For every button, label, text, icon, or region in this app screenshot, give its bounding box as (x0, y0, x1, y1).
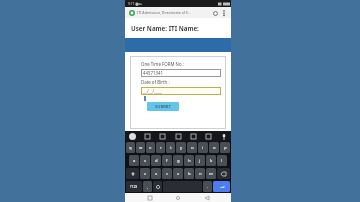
staticText: . (207, 184, 209, 190)
button[interactable]: v (173, 168, 183, 179)
button[interactable]: a (129, 155, 139, 166)
staticText: x (155, 171, 158, 177)
button[interactable]: d (151, 155, 161, 166)
button[interactable]: i (198, 142, 208, 153)
button[interactable]: o (209, 142, 219, 153)
staticText: s (144, 158, 147, 164)
staticText: y (180, 145, 183, 151)
button[interactable]: s (140, 155, 150, 166)
button[interactable]: Refresh (212, 10, 218, 16)
button[interactable]: Voice input (220, 133, 227, 140)
staticText: i (202, 145, 204, 151)
button[interactable]: g (173, 155, 183, 166)
button[interactable]: Emoji (153, 181, 162, 192)
button[interactable]: ?123 (126, 181, 142, 192)
button[interactable]: Shift (126, 168, 139, 179)
staticText: SUBMIT (155, 104, 171, 110)
button[interactable]: GIF (144, 133, 151, 140)
button[interactable]: b (184, 168, 194, 179)
button[interactable]: Clipboard (190, 133, 197, 140)
staticText: User Name: ITI Name: (131, 24, 199, 32)
staticText: 9:17 ⬤▾▴ (128, 2, 142, 6)
button[interactable]: l (217, 155, 227, 166)
button[interactable]: . (203, 181, 212, 192)
staticText: u (191, 145, 194, 151)
staticText: v (177, 171, 180, 177)
staticText: a (133, 158, 136, 164)
staticText: ?123 (130, 184, 138, 189)
button[interactable]: n (195, 168, 205, 179)
button[interactable]: SUBMIT (147, 102, 179, 111)
button[interactable]: z (140, 168, 150, 179)
staticText: t (170, 145, 172, 151)
button[interactable]: More (205, 133, 212, 140)
staticText: 44571341 (143, 70, 164, 76)
button[interactable]: w (136, 142, 145, 153)
button[interactable]: Recents (146, 194, 154, 202)
staticText: Date of Birth : (141, 79, 170, 85)
staticText: d (155, 158, 158, 164)
staticText: , (147, 184, 149, 190)
button[interactable]: x (151, 168, 161, 179)
button[interactable]: Keyboard settings (129, 133, 136, 140)
staticText: One Time FORM No : (141, 61, 184, 67)
button[interactable]: h (184, 155, 194, 166)
button[interactable]: , (143, 181, 152, 192)
staticText: f (166, 158, 168, 164)
button[interactable]: Back (203, 194, 211, 202)
button[interactable]: p (220, 142, 230, 153)
button[interactable]: More options (220, 9, 227, 16)
button[interactable]: Settings (175, 133, 182, 140)
button[interactable]: Backspace (217, 168, 230, 179)
staticText: n (199, 171, 202, 177)
staticText: o (213, 145, 216, 151)
button[interactable]: u (187, 142, 197, 153)
staticText: r (160, 145, 162, 151)
staticText: p (224, 145, 227, 151)
staticText: j (199, 158, 201, 164)
staticText: e (149, 145, 152, 151)
staticText: ITI Admission, Directorate of E… (137, 10, 191, 15)
staticText: w (139, 145, 143, 151)
staticText: g (177, 158, 180, 164)
button[interactable]: r (156, 142, 165, 153)
button[interactable]: q (126, 142, 135, 153)
button[interactable]: e (146, 142, 155, 153)
staticText: q (129, 145, 132, 151)
staticText: c (166, 171, 169, 177)
button[interactable]: Home (174, 194, 182, 202)
staticText: l (221, 158, 223, 164)
button[interactable]: 44571341 (141, 69, 221, 77)
button[interactable]: Sticker (159, 133, 166, 140)
button[interactable]: j (195, 155, 205, 166)
staticText: h (188, 158, 191, 164)
button[interactable]: c (162, 168, 172, 179)
staticText: k (210, 158, 213, 164)
staticText: b (188, 171, 191, 177)
staticText: z (144, 171, 146, 177)
button[interactable]: y (176, 142, 186, 153)
button[interactable]: __/__/____ (141, 87, 221, 95)
button[interactable]: t (166, 142, 175, 153)
staticText: m (209, 171, 213, 177)
button[interactable]: f (162, 155, 172, 166)
button[interactable]: k (206, 155, 216, 166)
button[interactable]: m (206, 168, 216, 179)
staticText: __/__/____ (143, 88, 162, 94)
button[interactable]: Enter (213, 181, 230, 192)
